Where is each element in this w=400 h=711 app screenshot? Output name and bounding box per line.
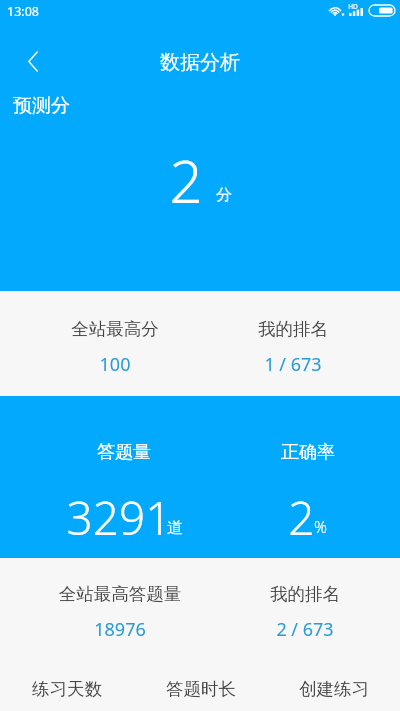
staticText: 18976: [30, 617, 210, 642]
staticText: 2 / 673: [215, 617, 395, 642]
staticText: 我的排名: [215, 583, 395, 605]
staticText: 创建练习: [299, 678, 369, 700]
staticText: 3291: [66, 486, 172, 549]
button[interactable]: 创建练习: [267, 666, 400, 711]
button[interactable]: 全站最高答题量: [0, 558, 200, 653]
staticText: 道: [167, 518, 183, 538]
staticText: 全站最高答题量: [30, 583, 210, 605]
staticText: 2: [169, 141, 203, 220]
button[interactable]: 全站最高分: [0, 291, 200, 396]
button[interactable]: Back: [10, 38, 56, 84]
staticText: 预测分: [13, 94, 70, 118]
staticText: 1 / 673: [203, 352, 383, 377]
button[interactable]: 练习天数: [0, 666, 134, 711]
staticText: %: [314, 516, 327, 538]
staticText: 2: [288, 486, 315, 549]
staticText: 100: [25, 352, 205, 377]
staticText: 练习天数: [32, 678, 102, 700]
staticText: 13:08: [7, 3, 39, 20]
button[interactable]: 我的排名: [200, 558, 400, 653]
staticText: 全站最高分: [25, 318, 205, 340]
staticText: 数据分析: [160, 50, 240, 75]
staticText: 正确率: [281, 441, 335, 464]
staticText: 分: [216, 185, 232, 205]
staticText: 答题量: [97, 441, 151, 464]
button[interactable]: 答题时长: [134, 666, 267, 711]
button[interactable]: 答题量: [24, 396, 224, 558]
staticText: 我的排名: [203, 318, 383, 340]
button[interactable]: 我的排名: [200, 291, 400, 396]
staticText: 答题时长: [166, 678, 236, 700]
button[interactable]: 正确率: [208, 396, 400, 558]
staticText: HD: [348, 2, 358, 11]
